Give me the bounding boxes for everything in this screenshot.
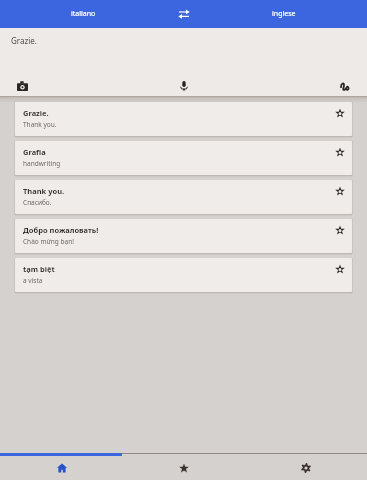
button[interactable]: Swap languages — [166, 0, 201, 28]
button[interactable]: Home — [0, 453, 123, 480]
button[interactable]: Thank you. — [15, 180, 352, 214]
button[interactable]: Settings — [245, 453, 367, 480]
button[interactable]: italiano — [0, 0, 166, 28]
button[interactable]: tạm biệt — [15, 258, 352, 292]
staticText: Chào mừng bạn! — [23, 237, 74, 246]
button[interactable]: Favourite — [328, 180, 352, 202]
staticText: Grafia — [23, 147, 46, 157]
button[interactable]: Добро пожаловать! — [15, 219, 352, 253]
staticText: Thank you. — [23, 186, 65, 196]
staticText: Grazie. — [11, 35, 37, 46]
button[interactable]: Voice input — [171, 73, 197, 99]
staticText: Добро пожаловать! — [23, 225, 99, 235]
staticText: Grazie. — [23, 108, 49, 118]
button[interactable]: Favourite — [328, 258, 352, 280]
button[interactable]: Favourite — [328, 141, 352, 163]
staticText: a vista — [23, 276, 43, 285]
staticText: Спасибо. — [23, 198, 52, 207]
staticText: italiano — [71, 9, 96, 19]
staticText: handwriting — [23, 159, 61, 168]
staticText: Thank you. — [23, 120, 57, 129]
button[interactable]: Favourite — [328, 102, 352, 124]
button[interactable]: inglese — [201, 0, 367, 28]
button[interactable]: Grazie. — [15, 102, 352, 136]
button[interactable]: Handwriting input — [332, 73, 358, 99]
staticText: tạm biệt — [23, 264, 55, 274]
button[interactable]: Camera input — [9, 73, 35, 99]
button[interactable]: Favourites — [123, 453, 245, 480]
staticText: inglese — [272, 9, 296, 19]
button[interactable]: Grafia — [15, 141, 352, 175]
button[interactable]: Favourite — [328, 219, 352, 241]
